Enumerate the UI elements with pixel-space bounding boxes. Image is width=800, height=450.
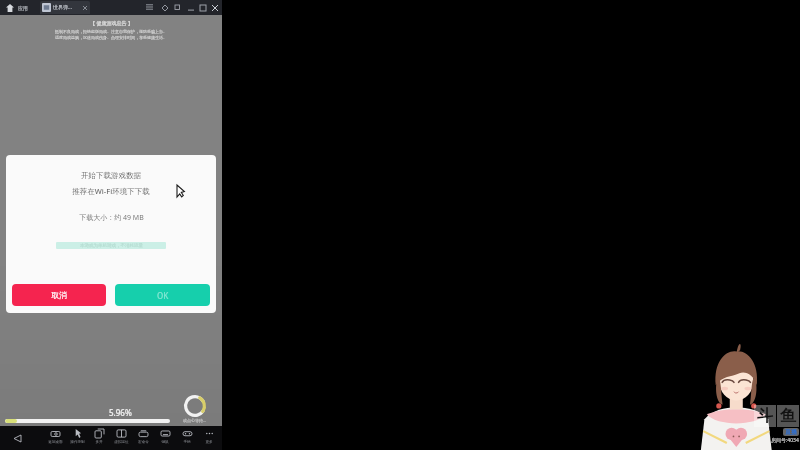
button[interactable]: 多开 bbox=[88, 426, 110, 450]
button[interactable]: OK bbox=[115, 284, 210, 306]
staticText: 鱼 bbox=[780, 406, 796, 426]
button[interactable]: Close tab bbox=[81, 4, 89, 12]
button[interactable]: Minimize bbox=[185, 2, 196, 13]
button[interactable]: Menu bbox=[143, 1, 156, 14]
button[interactable]: 宏命令 bbox=[132, 426, 154, 450]
staticText: 世界弹... bbox=[53, 4, 73, 11]
staticText: 下载大小：约 49 MB bbox=[79, 213, 144, 223]
staticText: 斗 bbox=[757, 406, 773, 426]
button[interactable]: Close bbox=[209, 2, 220, 13]
staticText: 多开 bbox=[95, 440, 103, 445]
button[interactable]: 操作录制 bbox=[66, 426, 88, 450]
staticText: 操作录制 bbox=[70, 440, 85, 445]
button[interactable]: 世界弹... bbox=[40, 1, 90, 14]
staticText: 推荐在Wi-Fi环境下下载 bbox=[72, 186, 150, 196]
staticText: 宏命令 bbox=[138, 440, 149, 445]
staticText: 键鼠 bbox=[161, 440, 169, 445]
button[interactable]: Back bbox=[10, 431, 24, 445]
staticText: 更多 bbox=[205, 440, 213, 445]
button[interactable]: 返回桌面 bbox=[44, 426, 66, 450]
button[interactable]: 虚拟定位 bbox=[110, 426, 132, 450]
button[interactable]: 取消 bbox=[12, 284, 106, 306]
staticText: 5.96% bbox=[109, 407, 132, 418]
button[interactable]: Maximize bbox=[197, 2, 208, 13]
staticText: 房间号:4034 bbox=[771, 437, 799, 444]
staticText: 虚拟定位 bbox=[114, 440, 129, 445]
staticText: 直播 bbox=[785, 428, 797, 436]
button[interactable]: Settings bbox=[159, 2, 170, 13]
staticText: 返回桌面 bbox=[48, 440, 63, 445]
staticText: 取消 bbox=[51, 290, 67, 300]
staticText: 应用 bbox=[18, 5, 28, 11]
button[interactable]: Screenshot bbox=[172, 2, 183, 13]
staticText: 手柄 bbox=[183, 440, 191, 445]
staticText: 适度游戏益脑，沉迷游戏伤身。合理安排时间，享受健康生活。 bbox=[55, 35, 167, 40]
staticText: 开始下载游戏数据 bbox=[81, 171, 141, 180]
button[interactable]: Home bbox=[3, 1, 16, 14]
staticText: 本游戏为单机游戏，不消耗流量 bbox=[80, 243, 143, 249]
staticText: 抵制不良游戏，拒绝盗版游戏。注意自我保护，谨防受骗上当。 bbox=[55, 29, 167, 34]
button[interactable]: 更多 bbox=[198, 426, 220, 450]
staticText: 【 健康游戏忠告 】 bbox=[90, 20, 133, 27]
staticText: 或点心等待… bbox=[183, 418, 207, 423]
button[interactable]: 手柄 bbox=[176, 426, 198, 450]
staticText: OK bbox=[157, 290, 169, 301]
button[interactable]: 键鼠 bbox=[154, 426, 176, 450]
